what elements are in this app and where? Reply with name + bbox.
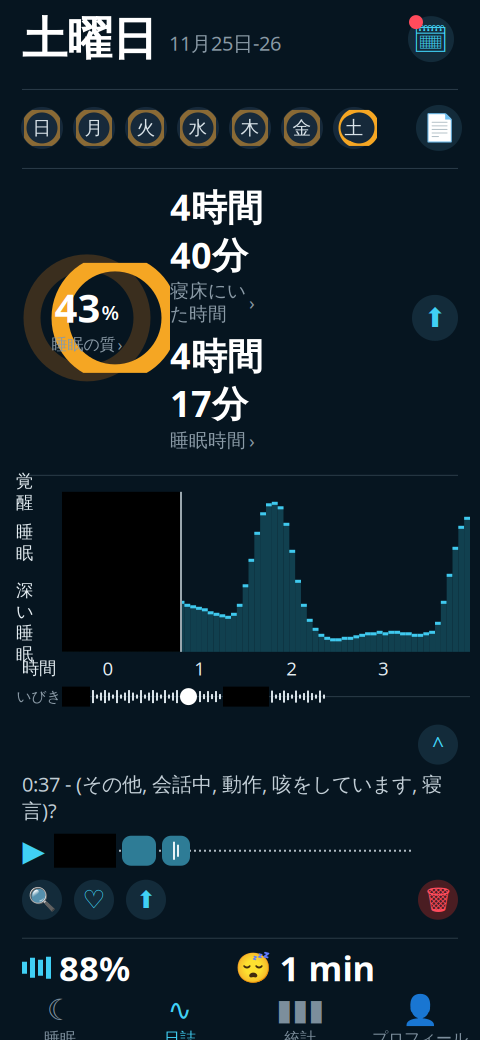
button[interactable]: Collapse — [418, 725, 458, 765]
staticText: 4時間 40分 — [170, 183, 263, 278]
staticText: › — [249, 428, 255, 453]
staticText: 土 — [344, 116, 363, 139]
staticText: 統計 — [284, 1029, 316, 1040]
staticText: › — [117, 334, 122, 355]
staticText: いびき — [16, 688, 61, 706]
button[interactable]: 4時間 40分 — [170, 183, 282, 325]
staticText: 0 — [102, 656, 113, 681]
staticText: ▮▮▮ — [276, 993, 324, 1027]
staticText: 睡眠 — [44, 1029, 76, 1040]
staticText: ∿ — [167, 993, 192, 1027]
staticText: 😴 — [234, 951, 271, 984]
staticText: 睡眠 — [16, 622, 33, 665]
staticText: 睡眠の質 — [51, 335, 115, 354]
button[interactable]: Analyze audio — [22, 880, 62, 920]
staticText: 深い — [16, 580, 34, 622]
button[interactable]: 月 — [70, 104, 118, 152]
staticText: 🔍 — [28, 887, 56, 913]
button[interactable]: Sleep — [0, 993, 120, 1040]
button[interactable]: Statistics — [240, 993, 360, 1040]
staticText: 日 — [32, 116, 51, 139]
staticText: 水 — [188, 116, 207, 139]
staticText: 睡眠 — [16, 521, 33, 564]
staticText: 土曜日 — [22, 11, 157, 67]
staticText: 43 — [54, 281, 100, 334]
staticText: 🗑 — [423, 886, 453, 913]
staticText: 日誌 — [164, 1029, 196, 1040]
staticText: 👤 — [401, 993, 438, 1027]
staticText: ♡ — [82, 885, 105, 914]
staticText: 0:37 - (その他, 会話中, 動作, 咳をしています, 寝言)? — [22, 771, 442, 824]
button[interactable]: Share — [412, 295, 458, 341]
button[interactable]: 火 — [122, 104, 170, 152]
staticText: 火 — [136, 116, 155, 139]
staticText: 1 — [194, 656, 205, 681]
staticText: 寝床にいた時間 — [170, 280, 246, 325]
staticText: 木 — [240, 116, 259, 139]
button[interactable]: 水 — [174, 104, 222, 152]
button[interactable]: 金 — [278, 104, 326, 152]
button[interactable]: Play — [18, 834, 50, 868]
staticText: 🗓 — [413, 23, 449, 55]
staticText: ^ — [432, 730, 444, 759]
staticText: ▶ — [22, 834, 45, 867]
staticText: 金 — [292, 116, 311, 139]
staticText: 📄 — [422, 113, 455, 143]
staticText: 1 min — [279, 945, 375, 991]
button[interactable]: 木 — [226, 104, 274, 152]
button[interactable]: Favorite — [74, 880, 114, 920]
button[interactable]: Share recording — [126, 880, 166, 920]
staticText: 月 — [84, 116, 103, 139]
staticText: 11月25日-26 — [169, 30, 281, 56]
staticText: ⬆ — [136, 886, 156, 913]
staticText: 3 — [378, 656, 389, 681]
staticText: 覚醒 — [16, 471, 33, 513]
staticText: › — [249, 290, 255, 315]
staticText: ☾ — [47, 993, 73, 1027]
staticText: ⬆ — [424, 303, 446, 333]
staticText: % — [101, 299, 119, 326]
staticText: 時間 — [22, 658, 56, 679]
button[interactable]: 日 — [18, 104, 66, 152]
staticText: 88% — [59, 945, 130, 991]
button[interactable]: Profile — [360, 993, 480, 1040]
staticText: 4時間 17分 — [170, 331, 263, 427]
staticText: 睡眠時間 — [170, 429, 246, 452]
staticText: プロフィール — [372, 1029, 468, 1040]
staticText: 2 — [286, 656, 297, 681]
button[interactable]: Notes — [416, 105, 462, 151]
button[interactable]: Delete — [418, 880, 458, 920]
button[interactable]: Calendar — [404, 12, 458, 66]
button[interactable]: 土 — [330, 104, 378, 152]
button[interactable]: Journal — [120, 993, 240, 1040]
button[interactable]: 4時間 17分 — [170, 331, 282, 453]
